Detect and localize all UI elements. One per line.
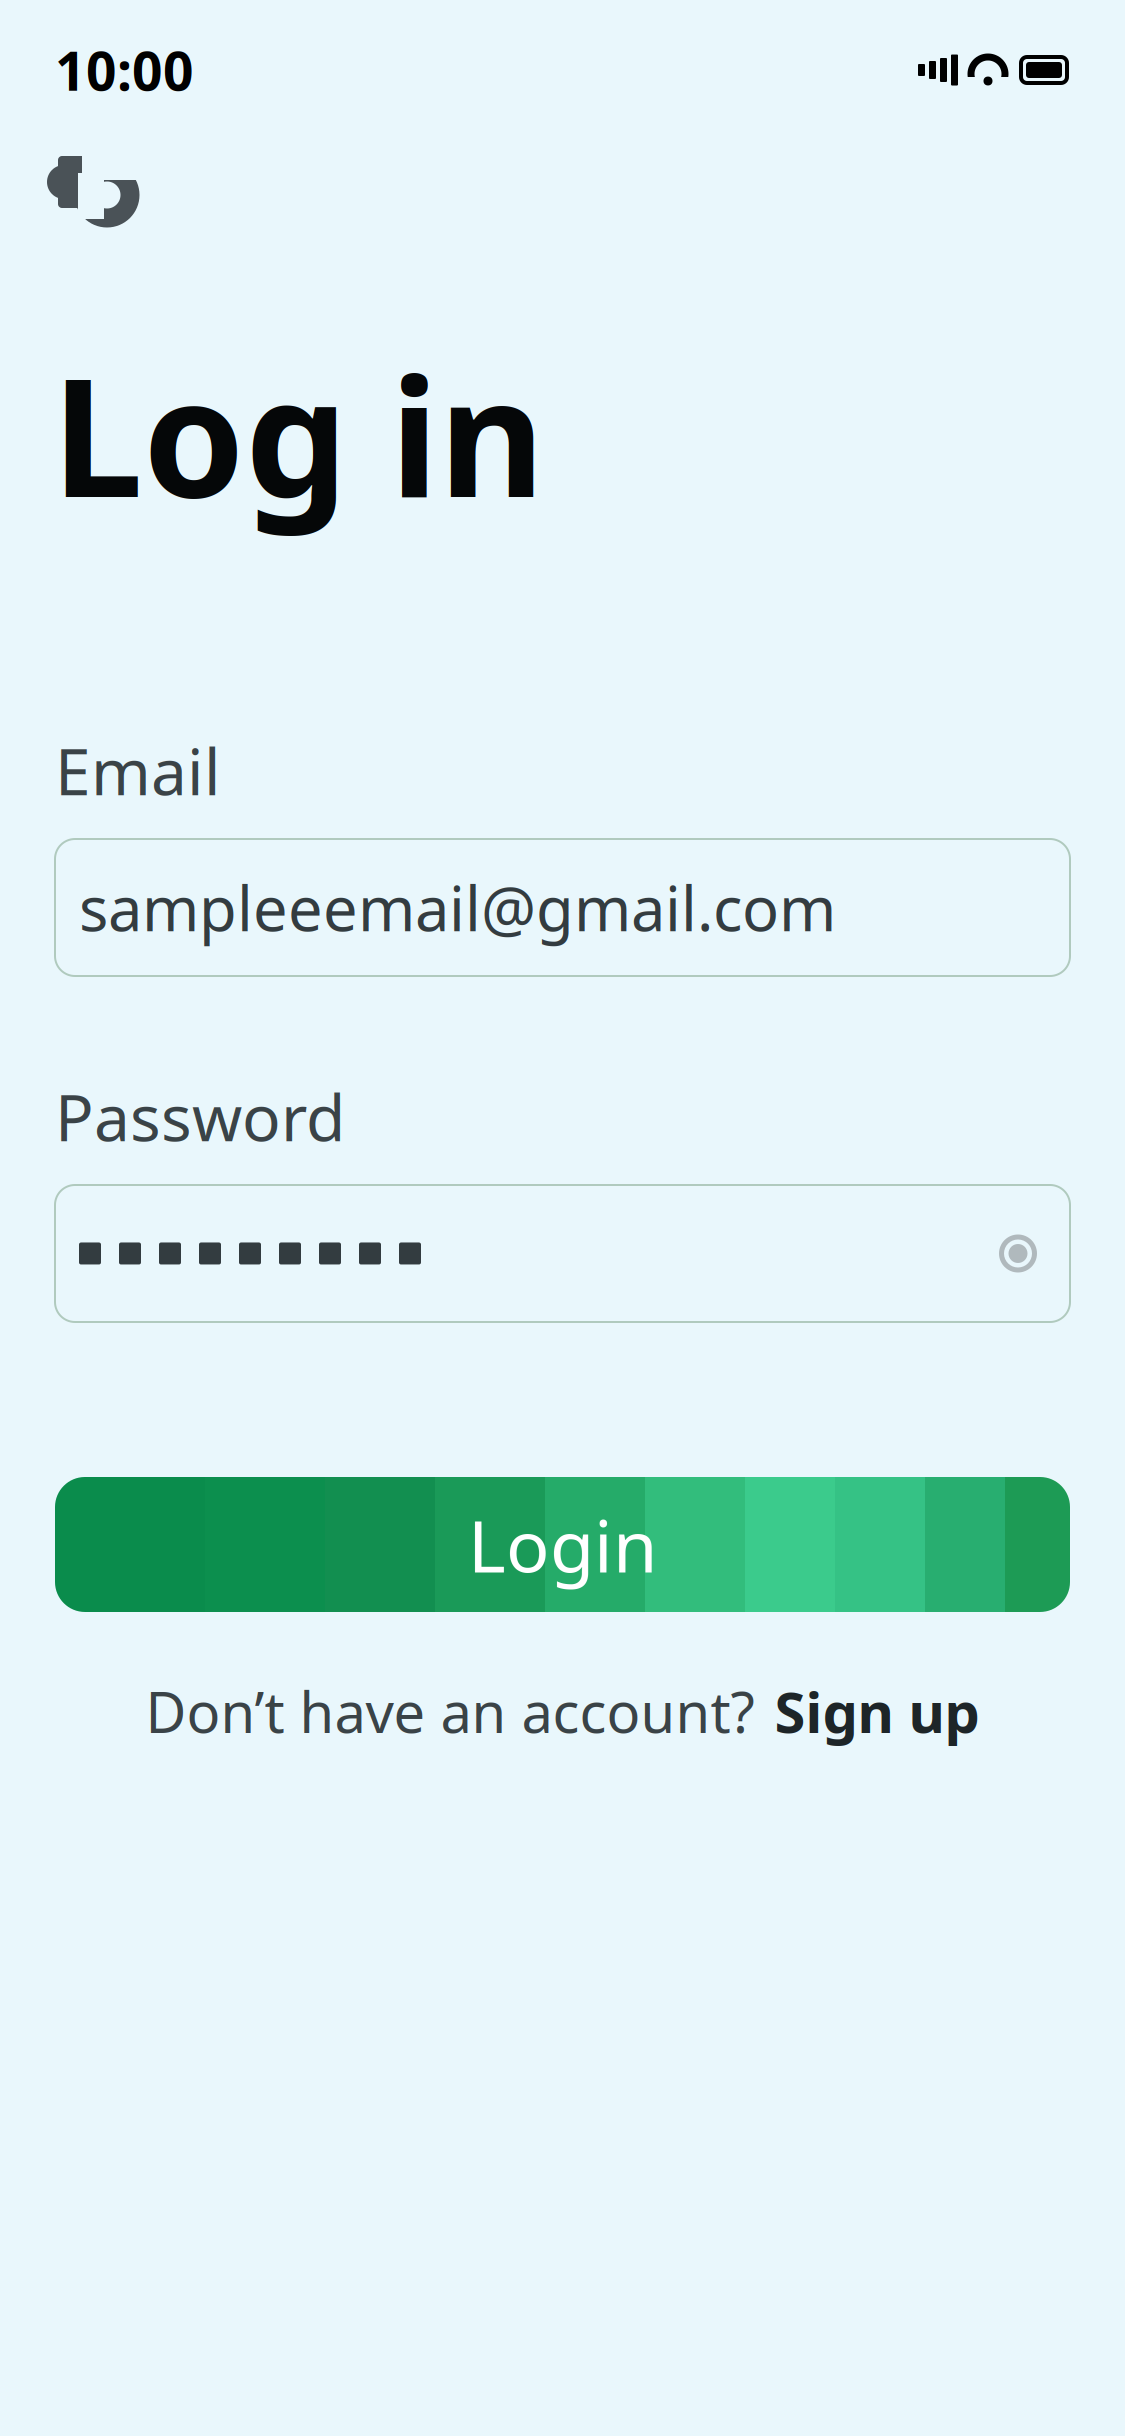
button[interactable]: Don’t have an account?: [145, 1664, 979, 1758]
button[interactable]: Login: [55, 1477, 1070, 1612]
staticText: Login: [468, 1497, 657, 1592]
staticText: Log in: [52, 326, 545, 542]
staticText: Email: [55, 728, 221, 813]
button[interactable]: Show password: [978, 1213, 1058, 1293]
staticText: 10:00: [55, 35, 194, 105]
staticText: Don’t have an account?: [145, 1674, 754, 1748]
staticText: Sign up: [774, 1674, 979, 1748]
button[interactable]: Back: [42, 148, 132, 216]
staticText: Password: [55, 1074, 345, 1159]
staticText: sampleeemail@gmail.com: [79, 867, 836, 948]
